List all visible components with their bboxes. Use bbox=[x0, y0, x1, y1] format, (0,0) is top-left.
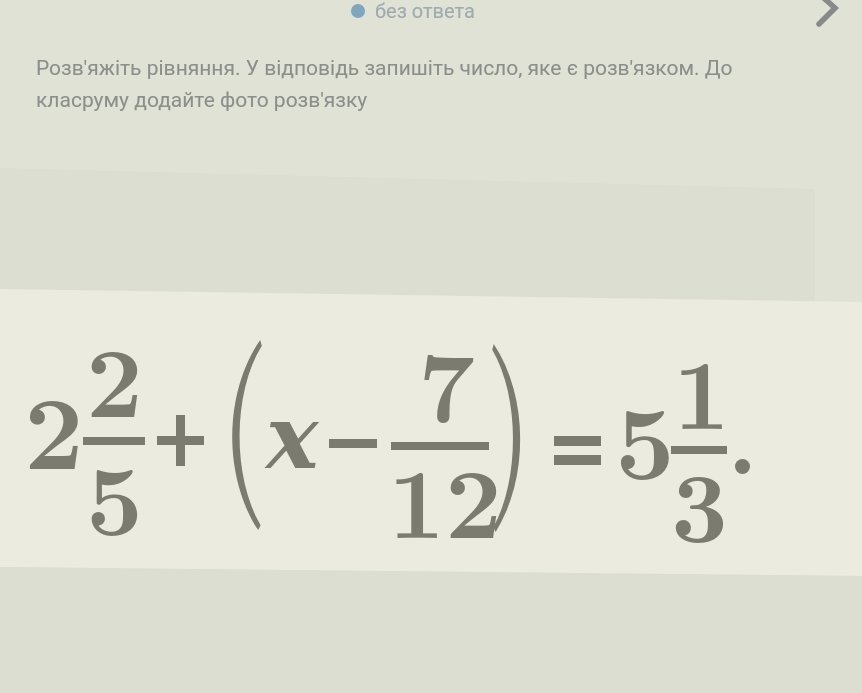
staticText: без ответа bbox=[375, 0, 475, 22]
staticText: 2 bbox=[24, 351, 84, 500]
staticText: класруму додайте фото розв'язку bbox=[36, 88, 368, 113]
staticText: 5 bbox=[615, 361, 675, 510]
staticText: 12 bbox=[388, 426, 502, 567]
button[interactable]: без ответа bbox=[340, 0, 488, 29]
staticText: Розв'яжіть рівняння. У відповідь запишіт… bbox=[36, 56, 733, 81]
staticText: 1 bbox=[673, 317, 730, 458]
staticText: 5 bbox=[86, 423, 143, 564]
staticText: x bbox=[266, 385, 319, 488]
staticText: 7 bbox=[418, 310, 475, 451]
button[interactable]: Next bbox=[808, 0, 852, 26]
staticText: 2 bbox=[86, 305, 143, 446]
staticText: 3 bbox=[671, 430, 728, 571]
